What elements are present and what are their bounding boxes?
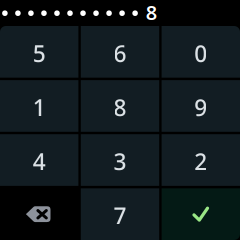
button[interactable]: 0: [162, 26, 240, 78]
button[interactable]: 6: [81, 26, 159, 78]
staticText: 8: [146, 0, 157, 26]
staticText: 7: [113, 201, 126, 231]
button[interactable]: 2: [162, 134, 240, 186]
button[interactable]: 7: [81, 188, 159, 240]
staticText: 4: [33, 146, 46, 177]
button[interactable]: 4: [0, 134, 78, 186]
button[interactable]: 8: [81, 80, 159, 132]
button[interactable]: 3: [81, 134, 159, 186]
staticText: 6: [113, 38, 126, 68]
staticText: 0: [194, 38, 207, 68]
staticText: 8: [113, 92, 126, 122]
staticText: 9: [194, 92, 207, 122]
button[interactable]: 1: [0, 80, 78, 132]
button[interactable]: 9: [162, 80, 240, 132]
staticText: 1: [33, 92, 46, 122]
staticText: 3: [113, 146, 126, 177]
staticText: 2: [194, 146, 207, 177]
button[interactable]: Delete: [0, 188, 78, 240]
button[interactable]: Confirm: [162, 188, 240, 240]
button[interactable]: 5: [0, 26, 78, 78]
staticText: 5: [33, 38, 46, 68]
